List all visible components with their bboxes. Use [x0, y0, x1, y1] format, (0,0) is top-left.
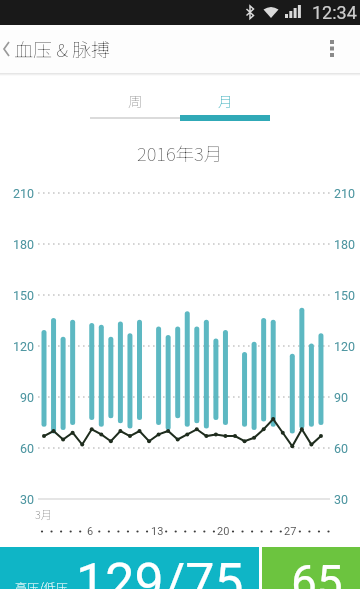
button[interactable] [262, 547, 360, 589]
staticText: 60 [20, 441, 35, 456]
button[interactable]: 周 [90, 80, 180, 121]
button[interactable] [0, 547, 259, 589]
staticText: 120 [13, 339, 35, 354]
staticText: 3月 [35, 506, 52, 522]
staticText: 210 [13, 186, 35, 201]
staticText: 血压 & 脉搏 [14, 35, 111, 63]
staticText: 210 [334, 186, 356, 201]
staticText: 65 [291, 555, 343, 589]
staticText: 150 [13, 288, 35, 303]
staticText: 高压/低压 [15, 578, 68, 589]
staticText: 13 [151, 525, 164, 538]
staticText: 129/75 [76, 552, 244, 589]
button[interactable] [0, 25, 14, 73]
staticText: 周 [128, 90, 143, 111]
button[interactable]: 月 [180, 80, 270, 121]
staticText: 20 [217, 525, 230, 538]
staticText: 27 [284, 525, 297, 538]
staticText: 120 [334, 339, 356, 354]
staticText: 12:34 [312, 2, 357, 23]
staticText: 150 [334, 288, 356, 303]
staticText: 30 [20, 492, 35, 507]
staticText: 30 [334, 492, 349, 507]
staticText: 90 [20, 390, 35, 405]
staticText: 2016年3月 [137, 140, 223, 164]
button[interactable] [318, 25, 348, 73]
staticText: 6 [87, 525, 94, 538]
staticText: 月 [218, 90, 233, 111]
staticText: 180 [13, 237, 35, 252]
staticText: 90 [334, 390, 349, 405]
staticText: 180 [334, 237, 356, 252]
staticText: 60 [334, 441, 349, 456]
